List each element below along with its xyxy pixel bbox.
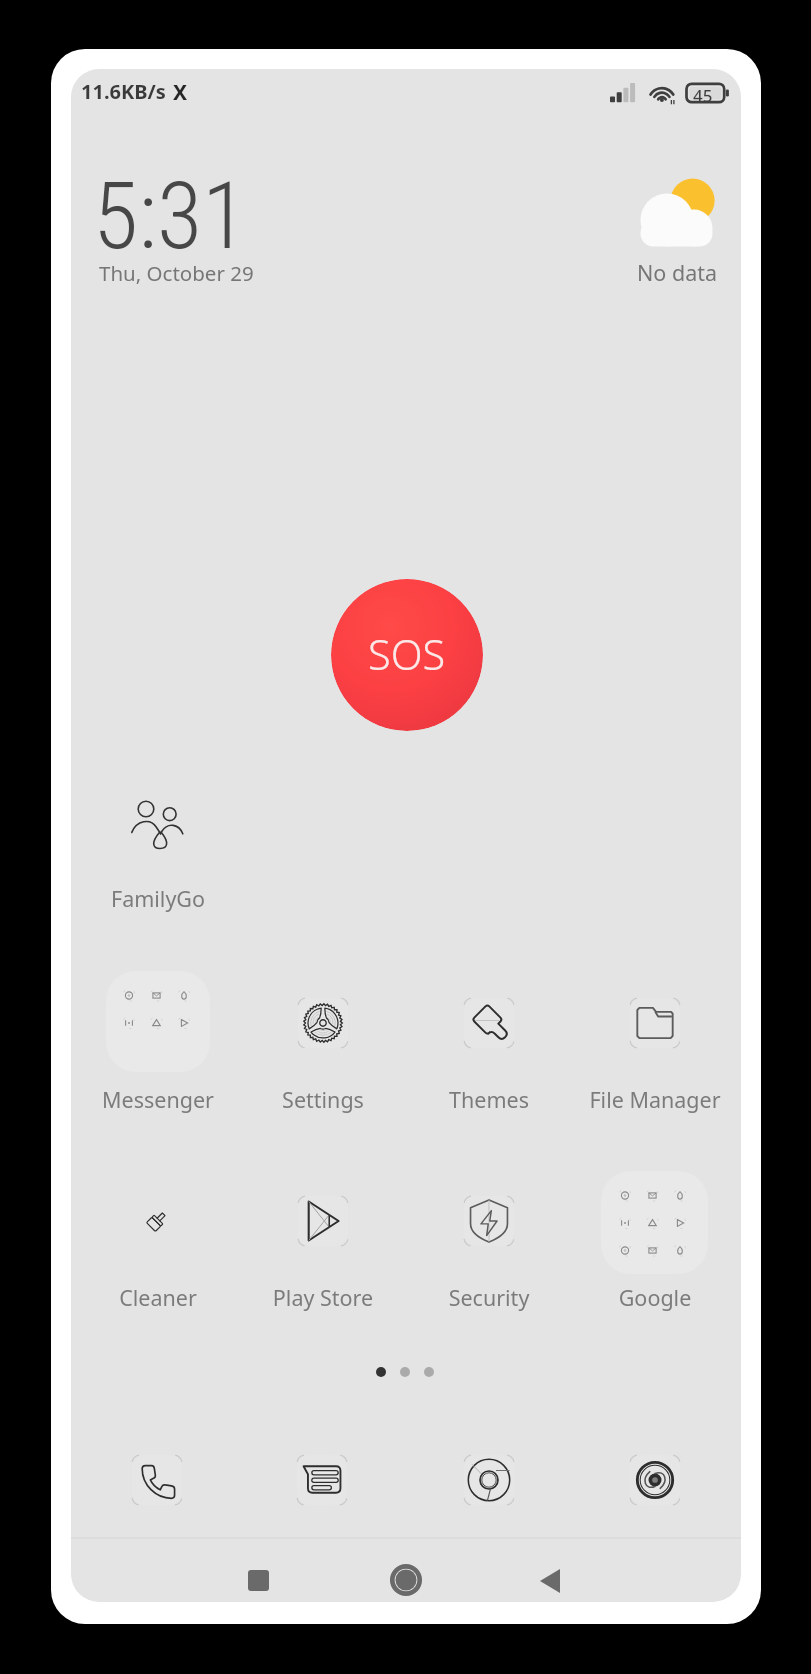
staticText: No data <box>627 258 727 287</box>
button[interactable]: Cleaner <box>76 1163 240 1313</box>
button[interactable]: FamilyGo <box>76 795 240 915</box>
button[interactable]: Back <box>520 1551 580 1602</box>
staticText: Themes <box>407 1085 571 1114</box>
button[interactable]: Play Store <box>241 1163 405 1313</box>
staticText: Security <box>407 1283 571 1312</box>
button[interactable]: Home <box>376 1550 436 1602</box>
button[interactable]: Settings <box>241 965 405 1115</box>
button[interactable]: Themes <box>407 965 571 1115</box>
button[interactable]: Security <box>407 1163 571 1313</box>
staticText: Google <box>573 1283 737 1312</box>
staticText: 5:31 <box>93 162 248 271</box>
staticText: 45 <box>693 84 713 107</box>
button[interactable]: Recents <box>228 1550 288 1602</box>
button[interactable]: Camera <box>615 1440 695 1520</box>
button[interactable]: Phone <box>117 1440 197 1520</box>
staticText: Thu, October 29 <box>99 259 254 287</box>
staticText: X <box>173 78 188 107</box>
button[interactable]: Google <box>573 1163 737 1313</box>
staticText: SOS <box>368 626 446 683</box>
staticText: Settings <box>241 1085 405 1114</box>
staticText: File Manager <box>573 1085 737 1114</box>
staticText: FamilyGo <box>76 884 240 913</box>
button[interactable]: SOS <box>331 579 483 731</box>
button[interactable]: File Manager <box>573 965 737 1115</box>
staticText: 11.6KB/s <box>81 78 166 105</box>
staticText: Play Store <box>241 1283 405 1312</box>
button[interactable]: Messenger <box>76 965 240 1115</box>
button[interactable]: Messages <box>282 1440 362 1520</box>
staticText: Messenger <box>76 1085 240 1114</box>
staticText: Cleaner <box>76 1283 240 1312</box>
button[interactable]: Chrome <box>449 1440 529 1520</box>
